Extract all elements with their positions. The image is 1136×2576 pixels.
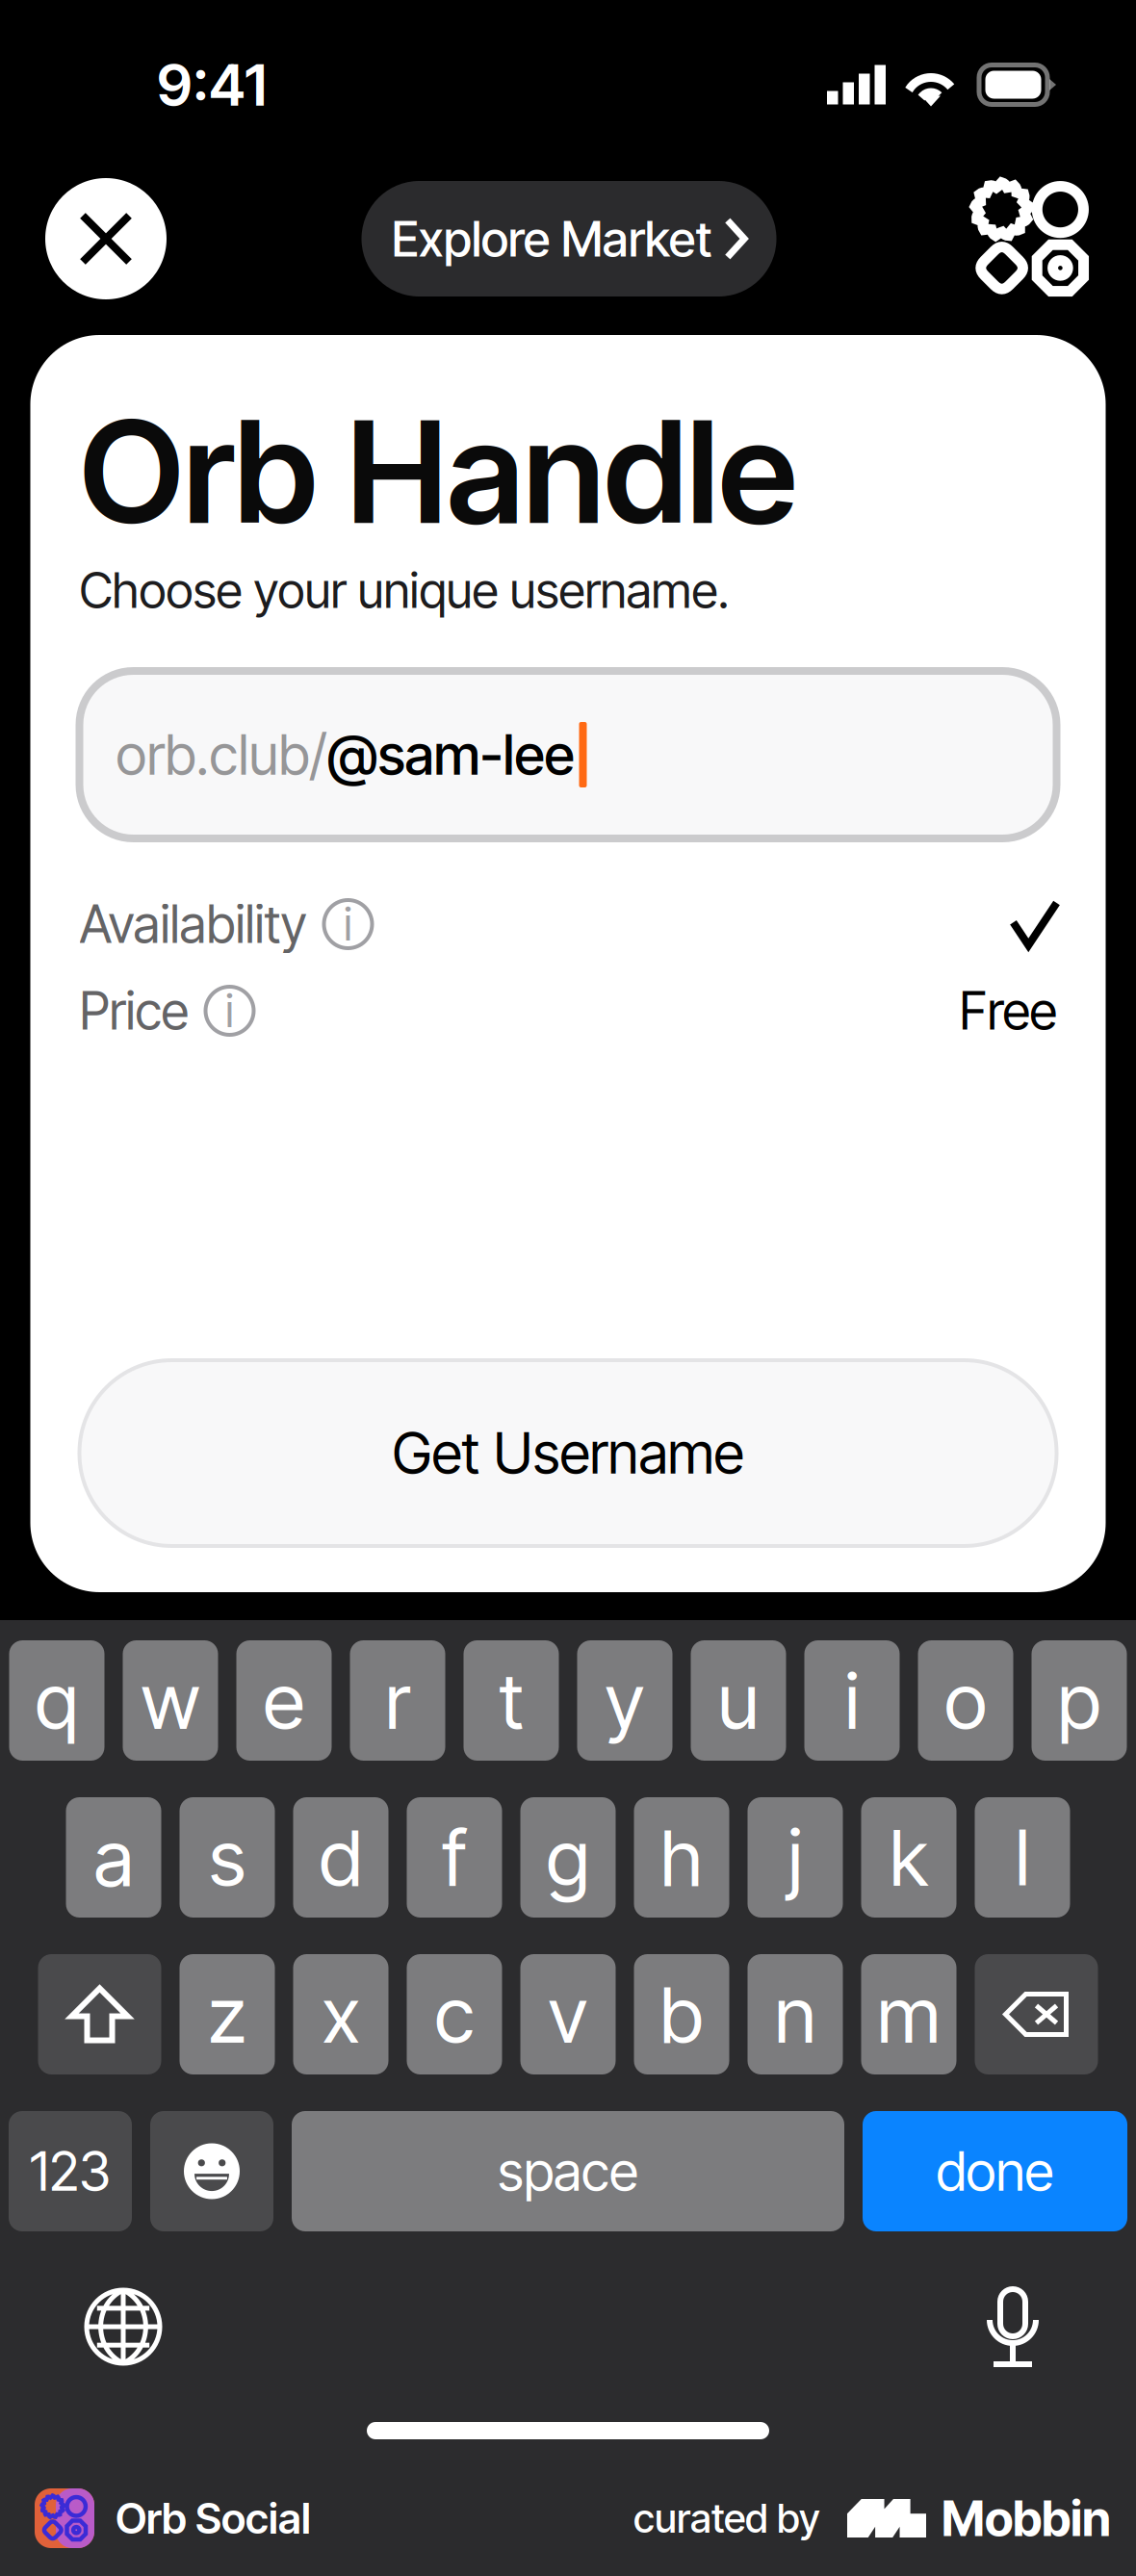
staticText: done [936,2139,1054,2204]
button[interactable]: j [748,1797,843,1918]
button[interactable]: b [634,1954,729,2074]
staticText: v [548,1968,588,2061]
staticText: Choose your unique username. [79,561,729,620]
staticText: l [1015,1811,1030,1904]
button[interactable]: n [748,1954,843,2074]
button[interactable]: x [293,1954,388,2074]
button[interactable]: c [407,1954,502,2074]
button[interactable]: Dictation [945,2276,1080,2378]
button[interactable]: v [520,1954,616,2074]
button[interactable]: w [123,1640,218,1761]
staticText: y [605,1654,645,1747]
staticText: q [35,1654,78,1747]
staticText: orb.club/ [116,721,327,788]
staticText: j [788,1811,802,1904]
button[interactable]: e [236,1640,332,1761]
staticText: Orb Handle [79,386,797,557]
button[interactable]: z [180,1954,275,2074]
button[interactable]: t [464,1640,559,1761]
button[interactable]: d [293,1797,388,1918]
staticText: t [499,1654,523,1747]
staticText: p [1058,1654,1101,1747]
staticText: c [435,1968,474,2061]
staticText: u [718,1654,759,1747]
staticText: b [660,1968,703,2061]
button[interactable]: Delete [975,1954,1098,2074]
staticText: h [660,1811,703,1904]
button[interactable]: Orb [971,179,1091,298]
staticText: i [845,1654,859,1747]
button[interactable]: o [918,1640,1013,1761]
button[interactable]: u [691,1640,786,1761]
button[interactable]: y [577,1640,672,1761]
button[interactable]: q [9,1640,104,1761]
button[interactable]: Explore Market [361,181,776,296]
staticText: a [94,1811,133,1904]
staticText: r [385,1654,410,1747]
staticText: z [208,1968,246,2061]
staticText: Get Username [392,1419,744,1487]
button[interactable]: i [804,1640,900,1761]
staticText: f [442,1811,466,1904]
button[interactable]: m [861,1954,956,2074]
staticText: Availability [79,893,307,955]
staticText: i [225,984,234,1038]
button[interactable]: a [66,1797,161,1918]
staticText: s [209,1811,245,1904]
button[interactable]: h [634,1797,729,1918]
staticText: k [890,1811,928,1904]
button[interactable]: p [1032,1640,1127,1761]
staticText: x [322,1968,360,2061]
button[interactable]: space [292,2111,844,2231]
staticText: @sam-lee [327,721,574,788]
staticText: Orb Social [116,2493,311,2544]
button[interactable]: Shift [38,1954,161,2074]
button[interactable]: r [350,1640,445,1761]
button[interactable]: s [180,1797,275,1918]
staticText: e [263,1654,305,1747]
button[interactable]: k [861,1797,956,1918]
staticText: 9:41 [157,50,267,120]
staticText: w [141,1654,200,1747]
staticText: d [319,1811,362,1904]
button[interactable]: done [863,2111,1127,2231]
button[interactable]: f [407,1797,502,1918]
button[interactable]: 123 [9,2111,132,2231]
staticText: m [877,1968,941,2061]
staticText: curated by [633,2494,820,2542]
button[interactable]: Emoji [150,2111,273,2231]
staticText: o [944,1654,987,1747]
button[interactable]: l [975,1797,1070,1918]
button[interactable]: Get Username [79,1360,1057,1546]
button[interactable]: Close [45,178,167,299]
staticText: Mobbin [942,2489,1111,2548]
staticText: Free [959,980,1057,1042]
staticText: g [546,1811,590,1904]
button[interactable]: Next keyboard [56,2276,191,2378]
staticText: n [775,1968,816,2061]
button[interactable]: g [520,1797,616,1918]
staticText: i [344,897,352,951]
staticText: Explore Market [392,209,712,268]
staticText: 123 [30,2139,111,2204]
staticText: Price [79,980,188,1042]
staticText: space [498,2139,638,2204]
